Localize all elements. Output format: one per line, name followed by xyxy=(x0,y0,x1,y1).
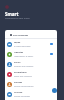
staticText: Stored messages xyxy=(14,95,31,98)
staticText: Group conversations xyxy=(14,85,34,88)
staticText: 24 new messages xyxy=(14,45,31,48)
staticText: Updates xyxy=(14,51,24,54)
staticText: Archive xyxy=(14,91,23,94)
staticText: Forums xyxy=(14,81,23,84)
staticText: Newsletters & offers xyxy=(14,55,34,58)
button[interactable]: Updates xyxy=(5,49,57,59)
button[interactable]: Promotions xyxy=(5,69,57,79)
staticText: Deals and coupons xyxy=(14,75,32,78)
staticText: Social xyxy=(14,61,21,64)
button[interactable]: Forums xyxy=(5,79,57,89)
staticText: Promotions xyxy=(14,71,27,74)
button[interactable]: Social xyxy=(5,59,57,69)
staticText: Inbox xyxy=(14,41,21,44)
button[interactable]: Inbox xyxy=(5,39,57,49)
button[interactable]: Archive xyxy=(5,89,57,99)
staticText: Smart xyxy=(5,11,19,17)
staticText: Organised & clear inbox xyxy=(5,17,30,20)
staticText: Friends and network xyxy=(14,65,34,68)
staticText: Key Messages xyxy=(13,34,29,37)
button[interactable]: Compose message xyxy=(52,88,57,93)
